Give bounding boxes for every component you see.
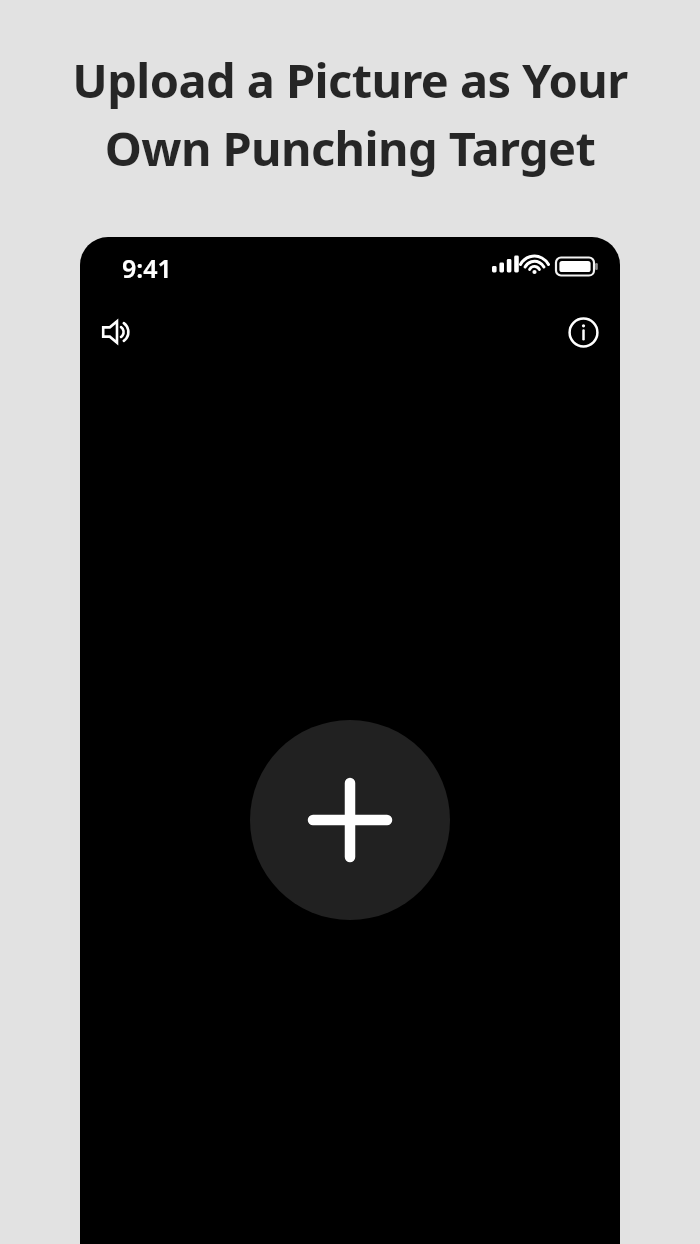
button[interactable]: Sound <box>93 308 141 356</box>
button[interactable]: Upload a picture <box>250 720 450 920</box>
button[interactable]: Info <box>559 308 607 356</box>
staticText: Upload a Picture as Your Own Punching Ta… <box>40 48 660 198</box>
staticText: 9:41 <box>122 251 172 285</box>
